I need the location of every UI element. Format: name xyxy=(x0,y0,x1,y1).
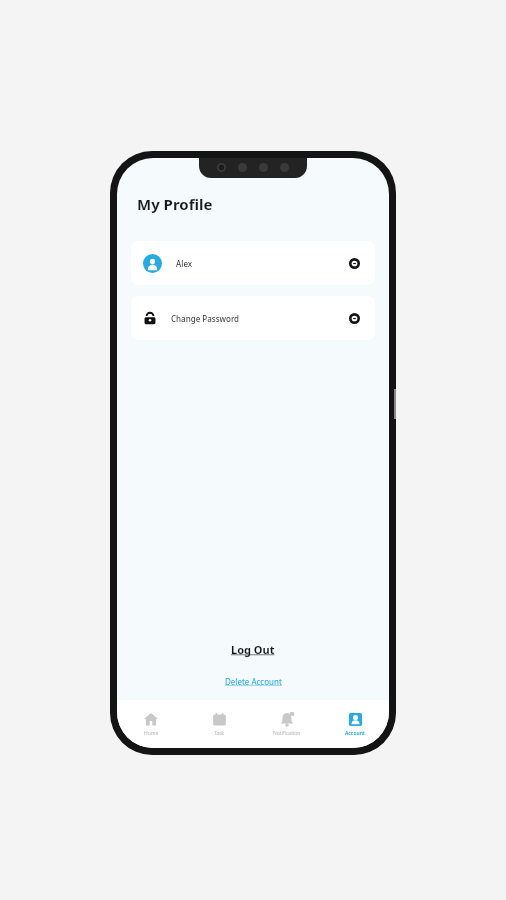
staticText: My Profile xyxy=(137,194,213,214)
button[interactable]: Open Change Password xyxy=(345,309,363,327)
button[interactable]: Delete Account xyxy=(117,676,389,687)
button[interactable]: Log Out xyxy=(117,642,389,657)
staticText: Account xyxy=(345,730,365,737)
button[interactable]: Open Alex xyxy=(345,254,363,272)
staticText: Task xyxy=(214,730,225,737)
staticText: Alex xyxy=(176,258,193,269)
button[interactable]: Notification xyxy=(253,706,321,742)
staticText: Log Out xyxy=(231,642,275,657)
staticText: Change Password xyxy=(171,313,240,324)
button[interactable]: Task xyxy=(185,707,253,742)
staticText: Notification xyxy=(273,730,301,737)
staticText: Delete Account xyxy=(225,676,282,687)
staticText: Home xyxy=(144,730,159,737)
button[interactable]: Home xyxy=(117,706,185,742)
button[interactable]: Account xyxy=(321,707,389,742)
button[interactable]: Change Password xyxy=(131,296,375,340)
button[interactable]: Alex xyxy=(131,241,375,285)
